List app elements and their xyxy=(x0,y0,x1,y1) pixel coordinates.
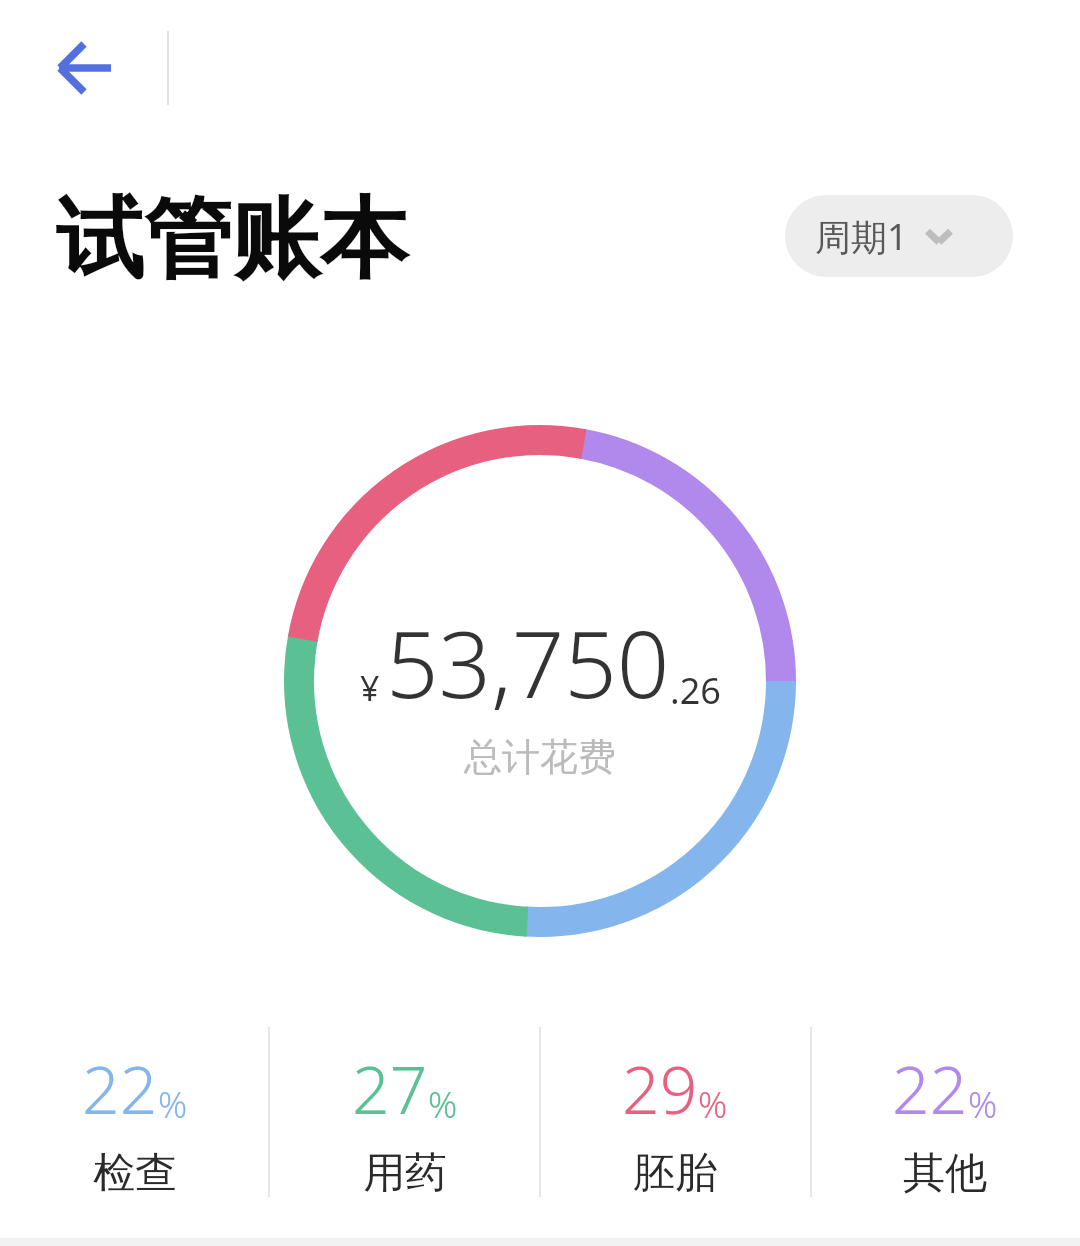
staticText: 29 xyxy=(622,1043,698,1133)
staticText: 22 xyxy=(892,1043,968,1133)
button[interactable]: 22 xyxy=(0,1027,270,1197)
staticText: 周期1 xyxy=(815,212,908,261)
staticText: 试管账本 xyxy=(56,184,408,295)
button[interactable]: 周期1 xyxy=(785,195,1013,277)
staticText: 检查 xyxy=(93,1147,177,1197)
staticText: 总计花费 xyxy=(464,733,616,781)
staticText: 27 xyxy=(352,1043,428,1133)
staticText: 53,750 xyxy=(386,600,670,725)
staticText: % xyxy=(158,1080,188,1129)
button[interactable]: 29 xyxy=(540,1027,810,1197)
staticText: % xyxy=(968,1080,998,1129)
button[interactable]: 22 xyxy=(810,1027,1080,1197)
button[interactable]: Back xyxy=(34,18,134,118)
staticText: 22 xyxy=(82,1043,158,1133)
staticText: 其他 xyxy=(903,1147,987,1197)
button[interactable]: 27 xyxy=(270,1027,540,1197)
staticText: 胚胎 xyxy=(633,1147,717,1197)
staticText: 用药 xyxy=(363,1147,447,1197)
staticText: % xyxy=(698,1080,728,1129)
staticText: .26 xyxy=(670,666,721,715)
staticText: % xyxy=(428,1080,458,1129)
staticText: ¥ xyxy=(360,665,380,711)
